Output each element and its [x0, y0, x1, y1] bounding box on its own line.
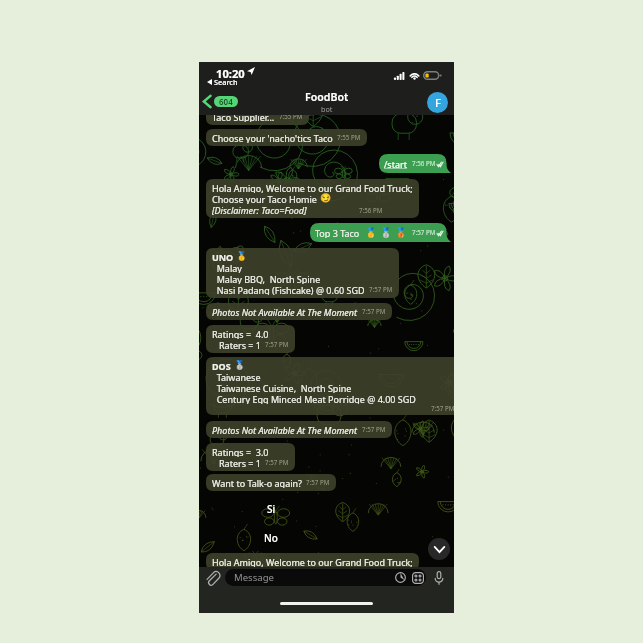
- staticText: Taco Supplier...: [212, 111, 275, 122]
- button[interactable]: Search: [207, 77, 238, 87]
- staticText: bot: [321, 104, 333, 114]
- staticText: Photos Not Available At The Moment: [212, 424, 358, 435]
- staticText: Taiwanese Cuisine, North Spine: [212, 382, 352, 393]
- staticText: UNO: [212, 251, 236, 262]
- button[interactable]: Taco Supplier...: [206, 108, 309, 125]
- staticText: 😏: [320, 193, 332, 204]
- button[interactable]: Hola Amigo, Welcome to our Grand Food Tr…: [206, 553, 419, 570]
- staticText: Photos Not Available At The Moment: [212, 306, 358, 317]
- staticText: Raters = 1: [212, 339, 261, 350]
- staticText: DOS: [212, 360, 234, 371]
- staticText: Nasi Padang (Fishcake) @ 0.60 SGD: [212, 284, 365, 295]
- staticText: 7:57 PM: [362, 425, 386, 433]
- staticText: 7:56 PM: [359, 206, 383, 214]
- button[interactable]: Want to Talk-o again?: [206, 474, 336, 491]
- staticText: Want to Talk-o again?: [212, 477, 302, 488]
- button[interactable]: Photos Not Available At The Moment: [206, 421, 392, 438]
- staticText: Malay BBQ, North Spine: [212, 273, 321, 284]
- button[interactable]: Ratings = 3.0: [206, 443, 295, 471]
- staticText: No: [264, 531, 278, 545]
- button[interactable]: Hola Amigo, Welcome to our Grand Food Tr…: [206, 179, 419, 218]
- staticText: 7:57 PM: [369, 285, 393, 293]
- button[interactable]: Voice message: [431, 569, 447, 587]
- staticText: Raters = 1: [212, 457, 261, 468]
- staticText: Taiwanese: [212, 371, 261, 382]
- staticText: Ratings = 3.0: [212, 446, 269, 457]
- staticText: 🥇: [365, 227, 377, 238]
- staticText: 7:55 PM: [279, 112, 303, 120]
- staticText: 604: [219, 96, 233, 107]
- button[interactable]: Schedule message: [394, 571, 407, 584]
- button[interactable]: Photos Not Available At The Moment: [206, 303, 392, 320]
- staticText: Message: [234, 571, 274, 584]
- staticText: 7:57 PM: [362, 307, 386, 315]
- staticText: Choose your Taco Homie: [212, 193, 320, 204]
- button[interactable]: Choose your 'nacho'tics Taco: [206, 129, 367, 146]
- staticText: 7:57 PM: [265, 458, 289, 466]
- staticText: 7:57 PM: [412, 228, 436, 236]
- staticText: 🥉: [395, 227, 407, 238]
- staticText: 10:20: [216, 66, 245, 81]
- button[interactable]: Profile: [427, 92, 448, 113]
- staticText: Hola Amigo, Welcome to our Grand Food Tr…: [212, 182, 413, 193]
- staticText: Ratings = 4.0: [212, 328, 269, 339]
- staticText: Search: [214, 77, 238, 87]
- button[interactable]: /start: [379, 154, 451, 173]
- button[interactable]: Top 3 Taco: [310, 223, 451, 242]
- button[interactable]: Ratings = 4.0: [206, 325, 295, 353]
- staticText: Hola Amigo, Welcome to our Grand Food Tr…: [212, 556, 413, 567]
- staticText: 🥈: [380, 227, 392, 238]
- staticText: Si: [267, 502, 276, 516]
- staticText: 7:57 PM: [306, 478, 330, 486]
- staticText: Century Egg Minced Meat Porridge @ 4.00 …: [212, 393, 416, 404]
- staticText: Choose your 'nacho'tics Taco: [212, 132, 333, 143]
- button[interactable]: No: [242, 527, 300, 549]
- staticText: 🥇: [236, 251, 248, 262]
- staticText: /start: [384, 158, 407, 169]
- button[interactable]: Back: [203, 95, 238, 108]
- button[interactable]: Keyboard: [411, 571, 424, 584]
- staticText: 7:57 PM: [431, 404, 454, 412]
- button[interactable]: Si: [242, 498, 300, 520]
- staticText: 🥈: [234, 360, 246, 371]
- staticText: 7:56 PM: [412, 159, 436, 167]
- button[interactable]: Message: [225, 569, 426, 586]
- staticText: FoodBot: [305, 90, 349, 104]
- button[interactable]: UNO: [206, 248, 399, 298]
- staticText: F: [435, 95, 441, 110]
- staticText: 7:55 PM: [337, 133, 361, 141]
- staticText: 7:57 PM: [265, 340, 289, 348]
- button[interactable]: DOS: [206, 357, 454, 415]
- staticText: Malay: [212, 262, 242, 273]
- staticText: Top 3 Taco: [315, 227, 360, 238]
- button[interactable]: Attach: [204, 569, 220, 587]
- staticText: [Disclaimer: Taco=Food]: [212, 204, 307, 215]
- button[interactable]: Scroll to bottom: [428, 538, 450, 560]
